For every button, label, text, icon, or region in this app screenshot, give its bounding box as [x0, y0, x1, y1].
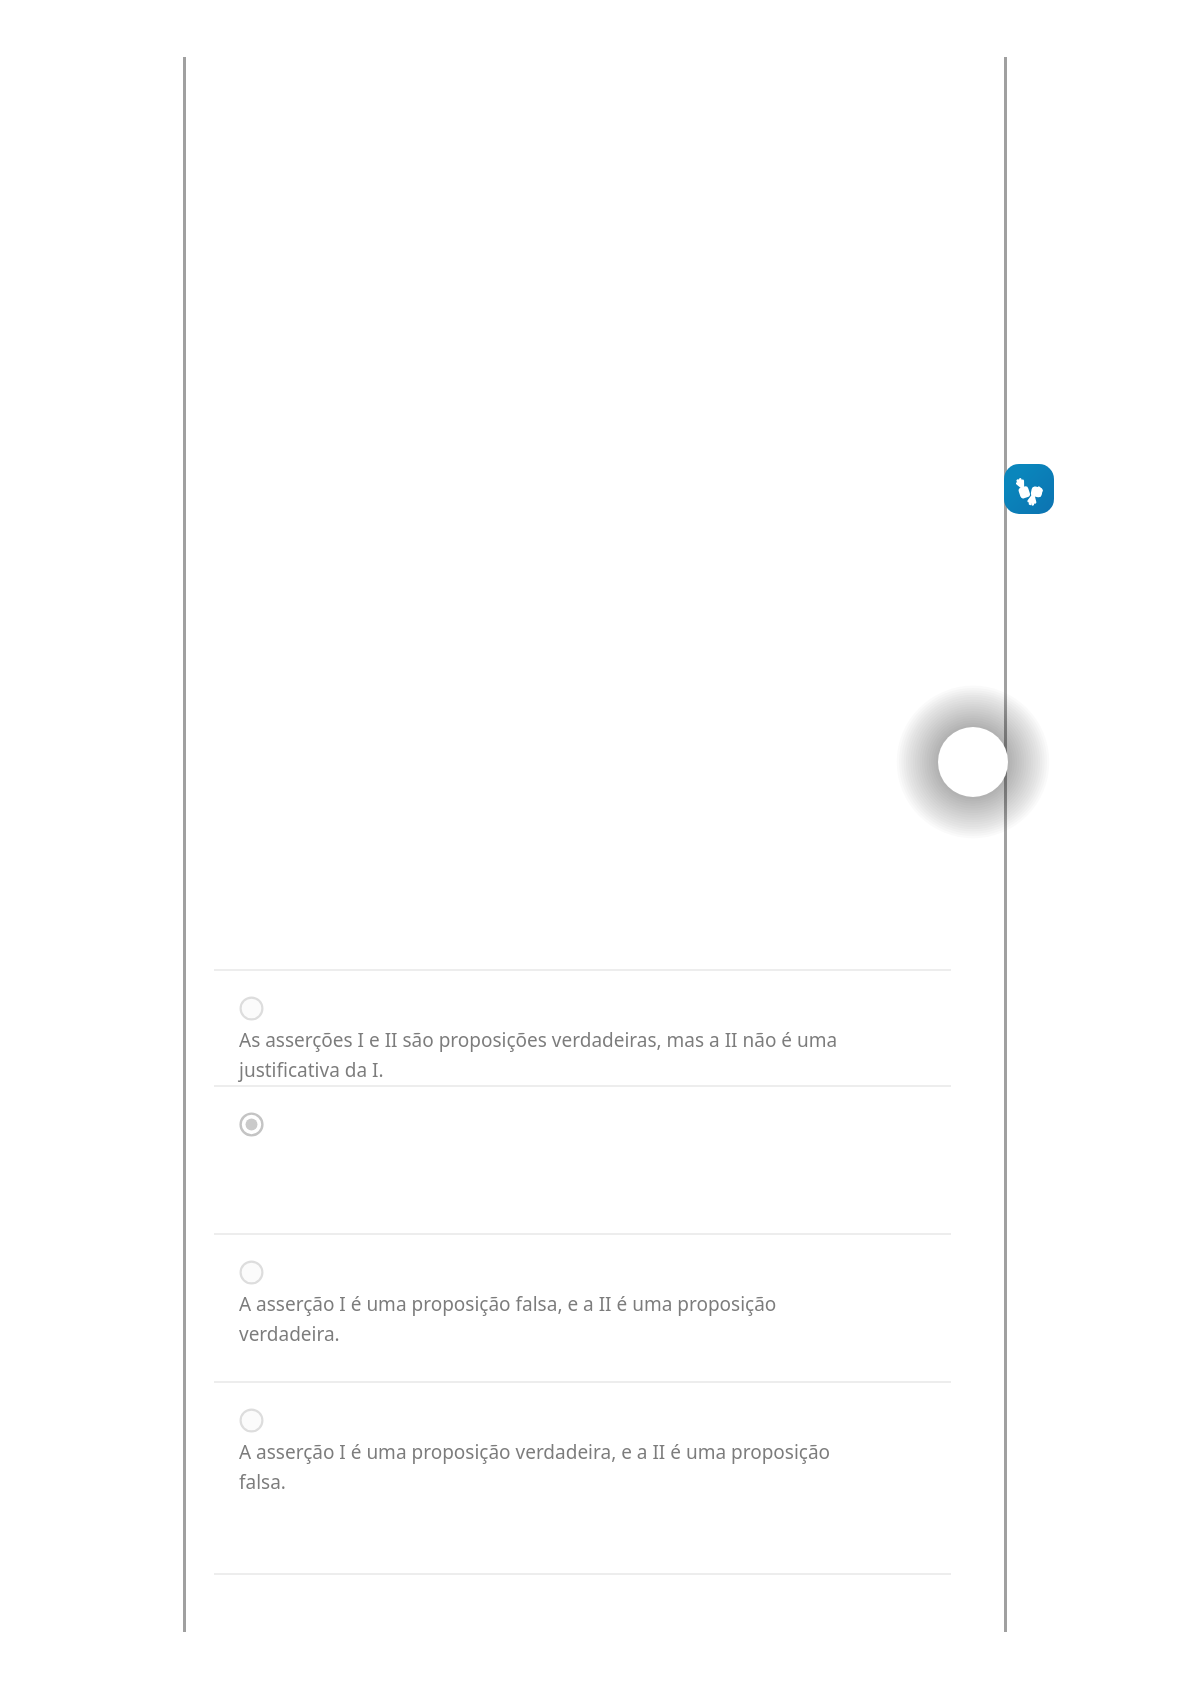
- button[interactable]: Accessibility options: [898, 687, 1048, 837]
- other: Not selected: [239, 1408, 264, 1433]
- other: Not selected: [239, 996, 264, 1021]
- staticText: As asserções I e II são proposições verd…: [239, 1027, 864, 1082]
- other: Not selected: [239, 1260, 264, 1285]
- staticText: A asserção I é uma proposição falsa, e a…: [239, 1291, 864, 1346]
- other: Selected: [239, 1112, 264, 1137]
- button[interactable]: Not selected: [214, 1381, 951, 1573]
- button[interactable]: Not selected: [214, 969, 951, 1085]
- button[interactable]: Selected: [214, 1085, 951, 1233]
- staticText: A asserção I é uma proposição verdadeira…: [239, 1439, 864, 1494]
- button[interactable]: VLibras sign language translator: [1004, 464, 1054, 514]
- button[interactable]: Not selected: [214, 1233, 951, 1381]
